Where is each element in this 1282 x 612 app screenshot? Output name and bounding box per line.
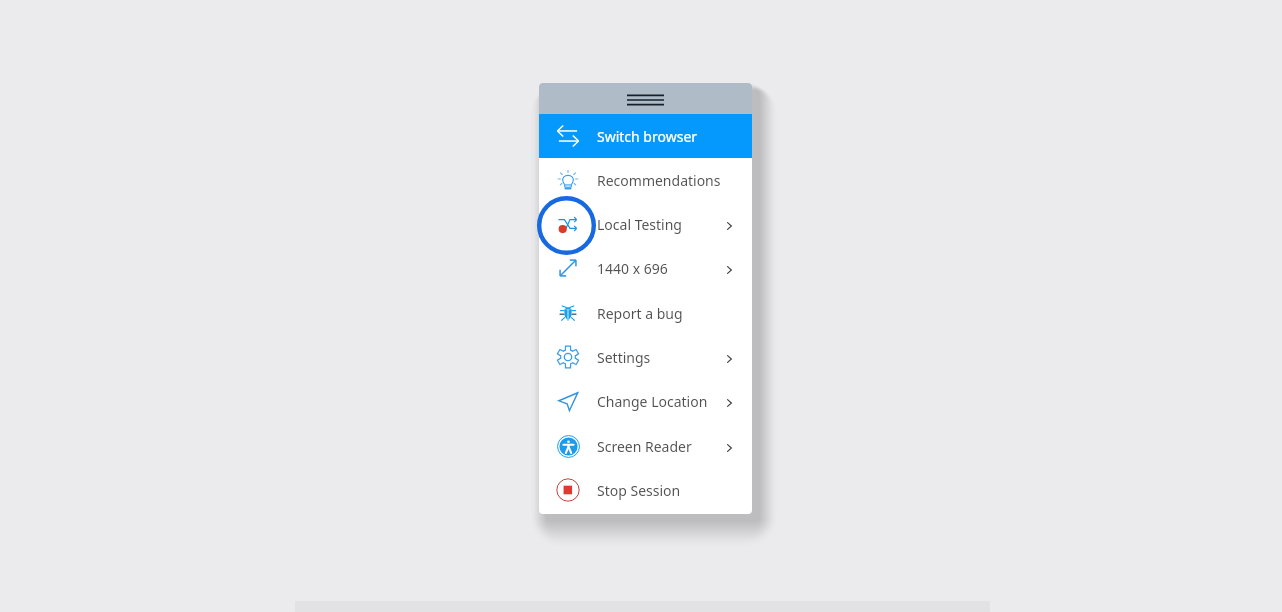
other: Settings (556, 345, 580, 369)
other: Stop Session (556, 478, 580, 502)
button[interactable]: Change Location (539, 379, 752, 423)
staticText: Recommendations (597, 171, 721, 190)
staticText: Stop Session (597, 481, 681, 500)
staticText: Settings (597, 348, 651, 367)
other: Change Location (557, 390, 580, 413)
button[interactable]: Switch browser (539, 114, 752, 158)
button[interactable]: Stop Session (539, 468, 752, 512)
other: Resize viewport (557, 257, 579, 279)
button[interactable]: Recommendations (539, 158, 752, 202)
staticText: Screen Reader (597, 437, 692, 456)
button[interactable]: Screen Reader (539, 424, 752, 468)
button[interactable]: Report a bug (539, 291, 752, 335)
button[interactable]: Drag handle (539, 83, 752, 114)
other: Report a bug (556, 301, 580, 325)
staticText: Local Testing (597, 215, 682, 234)
staticText: 1440 x 696 (597, 259, 668, 278)
other: Recommendations (556, 168, 580, 192)
staticText: Switch browser (597, 127, 698, 146)
other: Screen Reader (557, 435, 580, 458)
staticText: Report a bug (597, 304, 683, 323)
button[interactable]: Settings (539, 335, 752, 379)
button[interactable]: Resize viewport (539, 246, 752, 290)
staticText: Change Location (597, 392, 708, 411)
other: Switch browser (556, 124, 580, 148)
button[interactable]: Local Testing (539, 202, 752, 246)
other: Local Testing (558, 214, 578, 234)
